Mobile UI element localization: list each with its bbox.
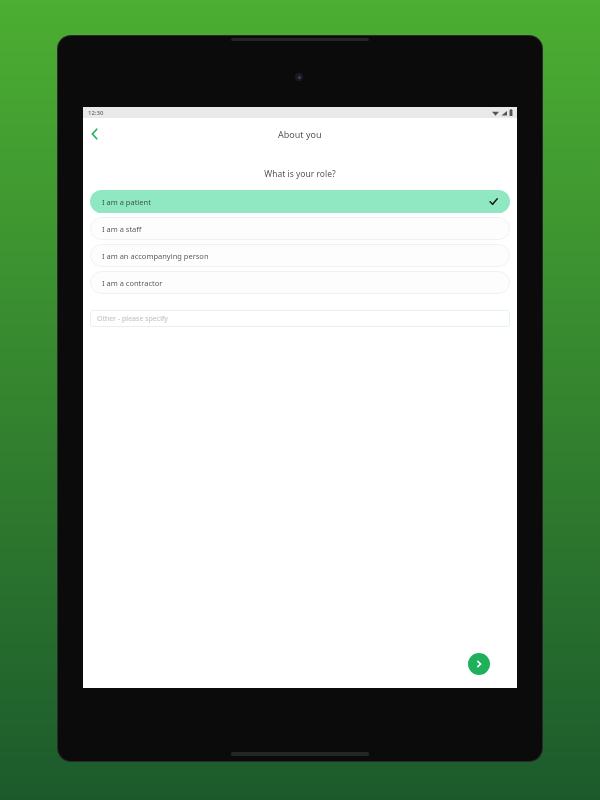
button[interactable]: I am an accompanying person [90,244,510,267]
button[interactable]: Other - please specify [90,310,510,327]
staticText: I am a patient [102,197,151,207]
staticText: I am an accompanying person [102,251,209,261]
button[interactable]: I am a contractor [90,271,510,294]
staticText: I am a staff [102,224,142,234]
staticText: I am a contractor [102,278,163,288]
button[interactable]: Next [468,653,490,675]
button[interactable]: I am a patient [90,190,510,213]
staticText: About you [278,128,322,140]
staticText: 12:30 [88,109,104,117]
staticText: Other - please specify [97,314,168,324]
staticText: What is your role? [83,168,517,180]
button[interactable]: I am a staff [90,217,510,240]
button[interactable]: Back [83,123,105,145]
